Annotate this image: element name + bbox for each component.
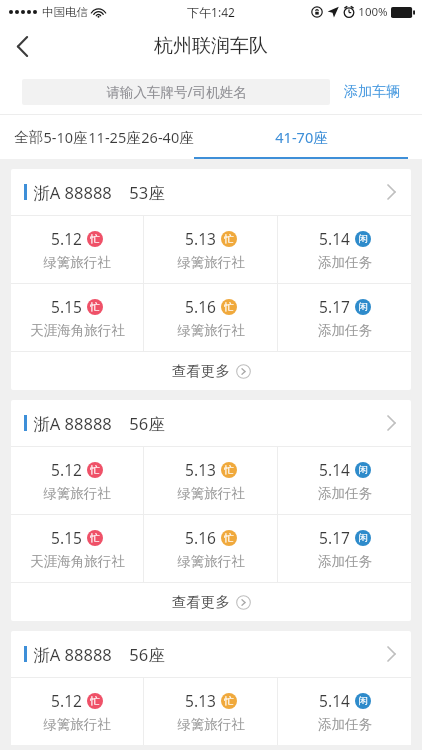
staticText: 56座 [129,643,165,666]
button[interactable]: 查看更多 [11,352,411,390]
staticText: 闲 [358,695,368,707]
staticText: 中国电信 [42,5,88,19]
staticText: 下午1:42 [187,4,235,20]
staticText: 忙 [224,532,234,544]
staticText: 查看更多 [172,362,230,380]
staticText: 26-40座 [141,127,194,147]
button[interactable]: 浙A 88888 [11,631,411,677]
staticText: 5-10座 [43,127,88,147]
staticText: 53座 [129,181,165,204]
button[interactable]: 5.13 [144,216,277,283]
button[interactable]: 5.17 [278,515,411,582]
staticText: 忙 [224,301,234,313]
staticText: 添加车辆 [344,83,400,101]
button[interactable]: 浙A 88888 [11,169,411,215]
staticText: 绿篱旅行社 [43,254,111,271]
staticText: 5.15 [51,296,82,317]
staticText: 5.16 [185,527,216,548]
staticText: 11-25座 [88,127,141,147]
staticText: 全部 [14,128,43,146]
button[interactable]: 5.17 [278,284,411,351]
staticText: 忙 [224,695,234,707]
staticText: 绿篱旅行社 [177,716,245,733]
button[interactable]: 5.15 [11,284,143,351]
button[interactable]: 查看更多 [11,583,411,621]
staticText: 闲 [358,301,368,313]
staticText: 5.14 [319,228,350,249]
staticText: 5.17 [319,527,350,548]
button[interactable]: 5-10座 [43,115,88,159]
staticText: 绿篱旅行社 [177,322,245,339]
button[interactable]: 5.12 [11,216,143,283]
staticText: 忙 [90,233,100,245]
button[interactable]: 添加车辆 [344,83,400,101]
staticText: 闲 [358,233,368,245]
button[interactable]: 26-40座 [141,115,194,159]
staticText: 添加任务 [318,254,372,271]
button[interactable]: 5.16 [144,515,277,582]
staticText: 添加任务 [318,553,372,570]
button[interactable]: 5.14 [278,216,411,283]
button[interactable]: 11-25座 [88,115,141,159]
staticText: 5.12 [51,459,82,480]
staticText: 5.15 [51,527,82,548]
staticText: 绿篱旅行社 [43,716,111,733]
button[interactable]: 返回 [0,24,44,68]
staticText: 天涯海角旅行社 [30,322,125,339]
staticText: 杭州联润车队 [154,34,268,58]
button[interactable]: 5.13 [144,447,277,514]
staticText: 浙A 88888 [33,643,112,666]
staticText: 添加任务 [318,485,372,502]
button[interactable]: 5.14 [278,678,411,745]
button[interactable]: 5.14 [278,447,411,514]
button[interactable]: 5.12 [11,678,143,745]
button[interactable]: 浙A 88888 [11,400,411,446]
staticText: 添加任务 [318,716,372,733]
staticText: 天涯海角旅行社 [30,553,125,570]
button[interactable]: 5.12 [11,447,143,514]
button[interactable]: 5.16 [144,284,277,351]
staticText: 5.17 [319,296,350,317]
button[interactable]: 5.15 [11,515,143,582]
staticText: 忙 [90,301,100,313]
staticText: 闲 [358,464,368,476]
staticText: 5.13 [185,228,216,249]
staticText: 5.12 [51,690,82,711]
staticText: 请输入车牌号/司机姓名 [106,83,247,101]
staticText: 绿篱旅行社 [43,485,111,502]
staticText: 5.13 [185,690,216,711]
staticText: 绿篱旅行社 [177,553,245,570]
staticText: 5.16 [185,296,216,317]
staticText: 添加任务 [318,322,372,339]
staticText: 浙A 88888 [33,412,112,435]
staticText: 忙 [90,464,100,476]
staticText: 查看更多 [172,593,230,611]
staticText: 绿篱旅行社 [177,485,245,502]
button[interactable]: 41-70座 [194,115,408,159]
button[interactable]: 请输入车牌号/司机姓名 [22,79,330,105]
staticText: 忙 [224,233,234,245]
staticText: 忙 [90,695,100,707]
staticText: 绿篱旅行社 [177,254,245,271]
staticText: 41-70座 [275,127,328,147]
staticText: 闲 [358,532,368,544]
staticText: 忙 [90,532,100,544]
staticText: 浙A 88888 [33,181,112,204]
staticText: 5.13 [185,459,216,480]
staticText: 5.12 [51,228,82,249]
button[interactable]: 5.13 [144,678,277,745]
staticText: 5.14 [319,690,350,711]
staticText: 100% [358,4,388,20]
staticText: 56座 [129,412,165,435]
staticText: 忙 [224,464,234,476]
button[interactable]: 全部 [14,115,43,159]
staticText: 5.14 [319,459,350,480]
